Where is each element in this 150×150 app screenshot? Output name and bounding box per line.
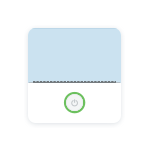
button[interactable]: Power [61, 89, 88, 116]
